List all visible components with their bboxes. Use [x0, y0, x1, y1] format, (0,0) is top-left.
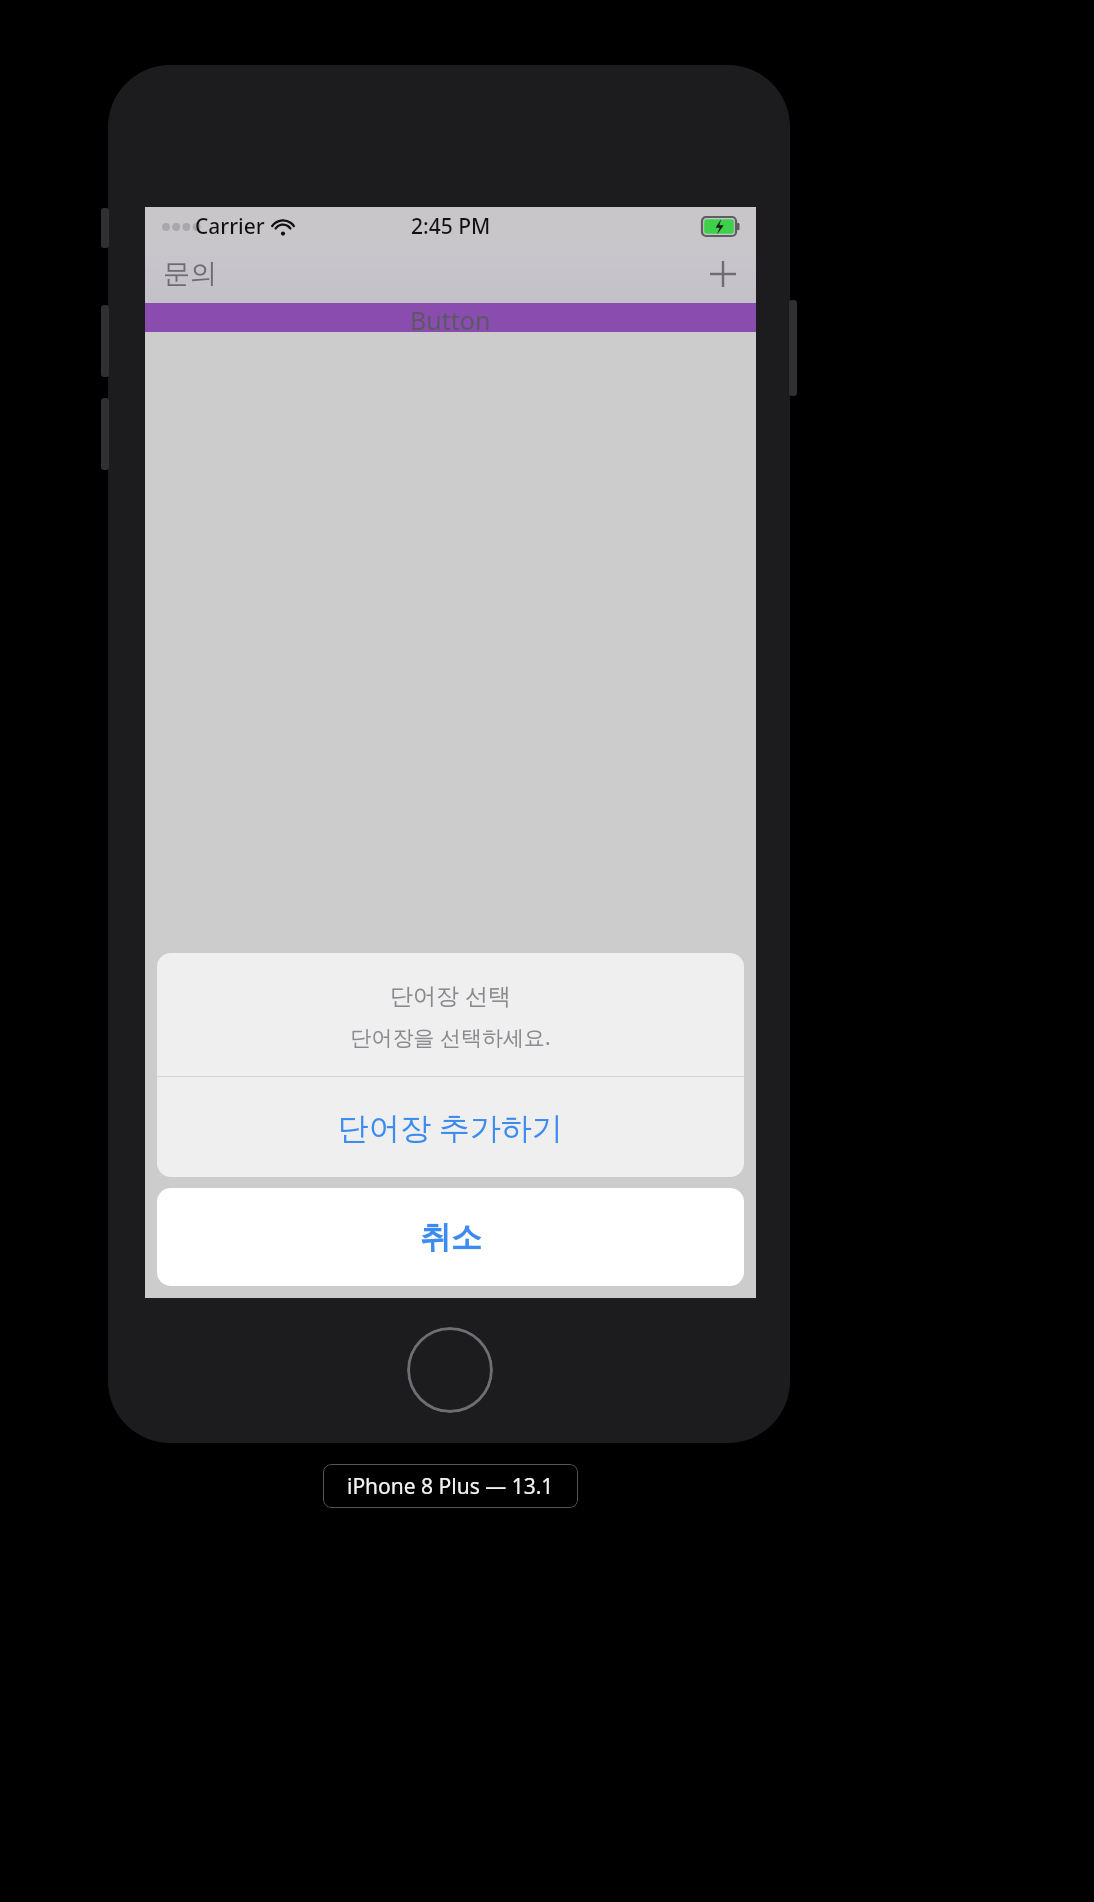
- button[interactable]: Add: [690, 251, 756, 297]
- staticText: 단어장을 선택하세요.: [350, 1023, 551, 1052]
- button[interactable]: 문의: [145, 251, 229, 297]
- staticText: 취소: [420, 1218, 482, 1257]
- staticText: Carrier: [195, 212, 265, 241]
- button[interactable]: Button: [145, 303, 756, 332]
- other: Home: [407, 1327, 493, 1413]
- staticText: Button: [410, 303, 491, 332]
- button[interactable]: 취소: [157, 1188, 744, 1286]
- button[interactable]: 단어장 추가하기: [157, 1077, 744, 1177]
- staticText: iPhone 8 Plus — 13.1: [347, 1472, 554, 1501]
- staticText: 2:45 PM: [411, 212, 491, 241]
- staticText: 문의: [163, 257, 217, 291]
- staticText: 단어장 선택: [390, 979, 511, 1010]
- staticText: 단어장 추가하기: [338, 1106, 564, 1148]
